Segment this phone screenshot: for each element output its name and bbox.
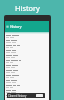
button[interactable] (5, 34, 49, 39)
button[interactable] (5, 64, 49, 69)
staticText: History (10, 24, 22, 29)
button[interactable] (5, 79, 49, 84)
button[interactable] (5, 49, 49, 54)
button[interactable] (5, 69, 49, 74)
button[interactable] (36, 94, 43, 97)
button[interactable] (5, 39, 49, 44)
button[interactable] (5, 54, 49, 59)
staticText: History (15, 3, 40, 13)
other: Navigate up (6, 25, 9, 28)
button[interactable]: Cleared history (7, 93, 45, 98)
button[interactable] (5, 59, 49, 64)
button[interactable]: Navigate up (5, 21, 49, 32)
staticText: Cleared history (8, 94, 27, 98)
button[interactable] (5, 84, 49, 89)
button[interactable] (5, 44, 49, 49)
button[interactable] (5, 89, 49, 94)
button[interactable] (5, 74, 49, 79)
button[interactable] (5, 94, 49, 99)
